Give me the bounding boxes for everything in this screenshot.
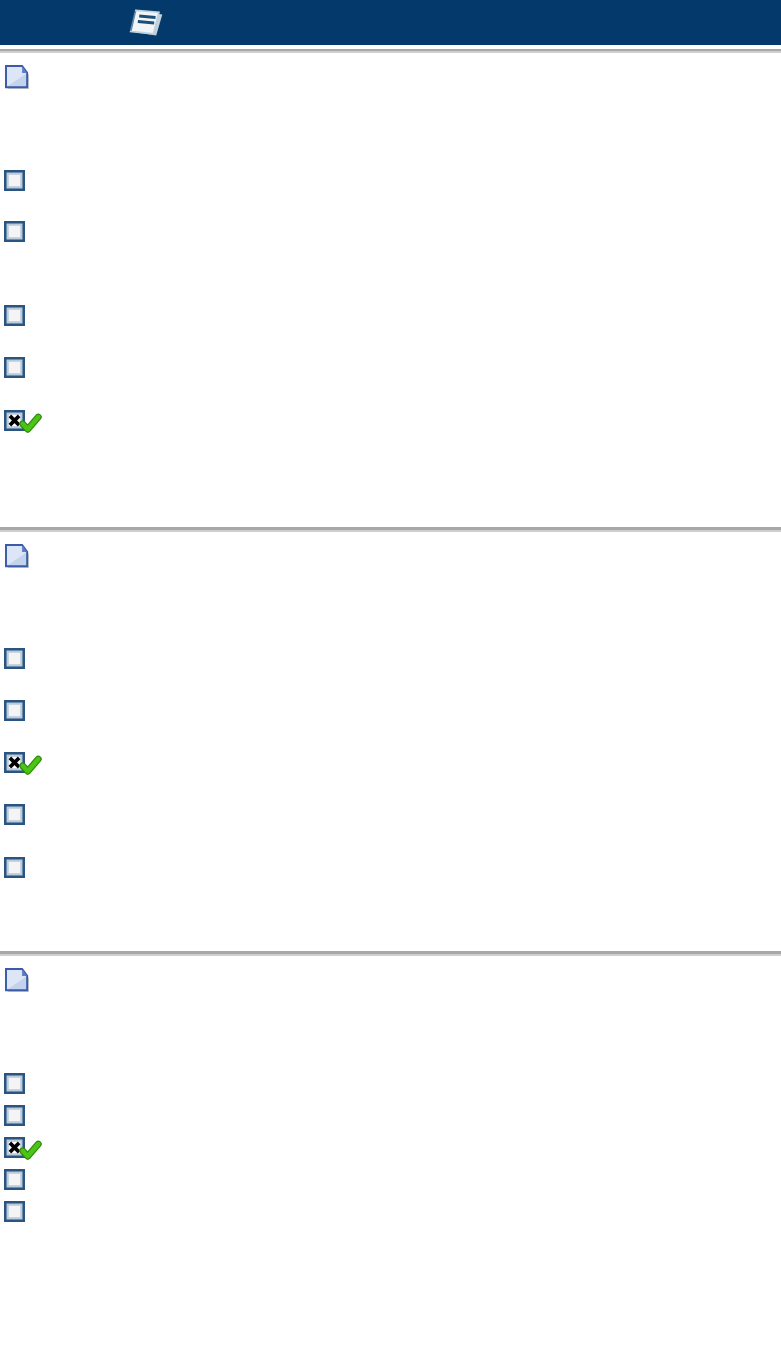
button[interactable]: Unchecked option	[0, 1103, 781, 1127]
button[interactable]: Notebook	[129, 8, 163, 38]
button[interactable]: Unchecked option	[0, 802, 781, 826]
button[interactable]: Document	[0, 967, 781, 993]
button[interactable]: Unchecked option	[0, 303, 781, 327]
button[interactable]: Document	[0, 543, 781, 569]
button[interactable]: Unchecked option	[0, 1071, 781, 1095]
button[interactable]: Unchecked option	[0, 1167, 781, 1191]
button[interactable]: Document	[0, 64, 781, 90]
button[interactable]: Unchecked option	[0, 855, 781, 879]
button[interactable]: Unchecked option	[0, 646, 781, 670]
button[interactable]: Incorrect answer, correct option	[0, 408, 781, 432]
button[interactable]: Unchecked option	[0, 698, 781, 722]
button[interactable]: Incorrect answer, correct option	[0, 750, 781, 774]
button[interactable]: Unchecked option	[0, 355, 781, 379]
button[interactable]: Incorrect answer, correct option	[0, 1135, 781, 1159]
button[interactable]: Unchecked option	[0, 168, 781, 192]
button[interactable]: Unchecked option	[0, 1199, 781, 1223]
button[interactable]: Unchecked option	[0, 219, 781, 243]
